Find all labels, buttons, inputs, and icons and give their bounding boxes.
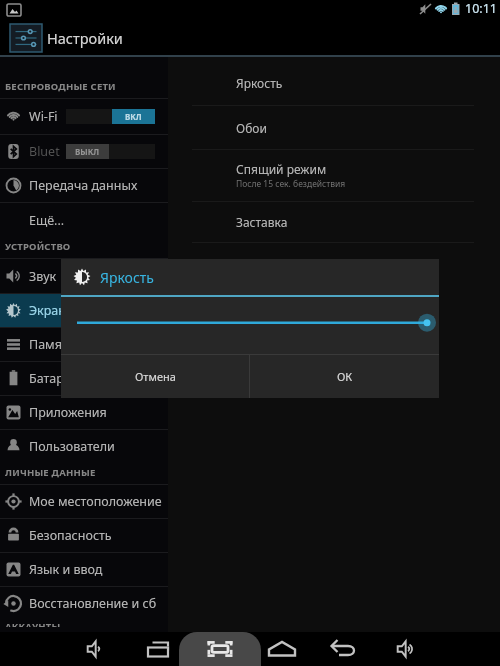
button[interactable]: Язык и ввод xyxy=(0,553,168,586)
button[interactable]: ОК xyxy=(250,355,439,398)
staticText: 10:11 xyxy=(465,0,497,17)
staticText: Приложения xyxy=(29,404,107,421)
staticText: ВЫКЛ xyxy=(75,146,100,157)
staticText: Обои xyxy=(236,120,267,136)
staticText: Экран xyxy=(29,302,66,319)
staticText: Мое местоположение xyxy=(29,493,162,510)
staticText: Безопасность xyxy=(29,527,112,544)
button[interactable]: ВКЛ xyxy=(66,109,155,124)
button[interactable]: Передача данных xyxy=(0,169,168,202)
staticText: Язык и ввод xyxy=(29,561,103,578)
staticText: Яркость xyxy=(100,268,154,287)
button[interactable]: Приложения xyxy=(0,396,168,429)
staticText: После 15 сек. бездействия xyxy=(236,178,346,190)
button[interactable]: Home xyxy=(241,632,323,666)
button[interactable]: Settings app icon xyxy=(10,24,42,52)
button[interactable]: Яркость xyxy=(61,259,439,398)
staticText: Яркость xyxy=(236,75,283,91)
staticText: ОК xyxy=(337,369,353,384)
button[interactable]: Заставка xyxy=(168,202,500,243)
button[interactable]: Обои xyxy=(168,106,500,150)
button[interactable]: Восстановление и сб xyxy=(0,587,168,620)
button[interactable]: Экран xyxy=(0,294,168,327)
staticText: Ещё... xyxy=(29,212,65,229)
button[interactable]: Ещё... xyxy=(0,203,168,237)
staticText: Память xyxy=(29,336,75,353)
staticText: Спящий режим xyxy=(236,161,327,177)
button[interactable]: Volume down xyxy=(55,632,137,666)
staticText: УСТРОЙСТВО xyxy=(5,240,71,253)
button[interactable]: Bluet xyxy=(0,135,168,168)
button[interactable]: Back xyxy=(302,632,384,666)
button[interactable]: Звук xyxy=(0,259,168,293)
staticText: Передача данных xyxy=(29,177,138,194)
staticText: ЛИЧНЫЕ ДАННЫЕ xyxy=(5,466,96,479)
button[interactable]: Отмена xyxy=(61,355,249,398)
button[interactable]: Память xyxy=(0,328,168,361)
staticText: Bluet xyxy=(29,143,60,160)
staticText: Звук xyxy=(29,268,57,285)
staticText: Wi-Fi xyxy=(29,108,58,125)
staticText: Пользователи xyxy=(29,438,115,455)
staticText: Восстановление и сб xyxy=(29,595,157,612)
button[interactable]: Screenshot xyxy=(179,632,261,666)
button[interactable]: Яркость xyxy=(168,61,500,106)
staticText: Батарея xyxy=(29,370,78,387)
staticText: АККАУНТЫ xyxy=(5,620,61,627)
button[interactable]: Volume up xyxy=(365,632,447,666)
button[interactable]: Wi-Fi xyxy=(0,99,168,134)
staticText: ВКЛ xyxy=(125,111,142,122)
button[interactable]: ВЫКЛ xyxy=(66,144,155,159)
button[interactable]: Recent apps xyxy=(117,632,199,666)
button[interactable]: Мое местоположение xyxy=(0,485,168,518)
button[interactable]: Спящий режим xyxy=(168,150,500,202)
staticText: Заставка xyxy=(236,214,288,230)
button[interactable]: Безопасность xyxy=(0,519,168,552)
staticText: БЕСПРОВОДНЫЕ СЕТИ xyxy=(5,80,116,93)
button[interactable]: Пользователи xyxy=(0,430,168,462)
staticText: Отмена xyxy=(135,369,176,384)
staticText: Настройки xyxy=(47,28,123,48)
button[interactable]: Батарея xyxy=(0,362,168,395)
